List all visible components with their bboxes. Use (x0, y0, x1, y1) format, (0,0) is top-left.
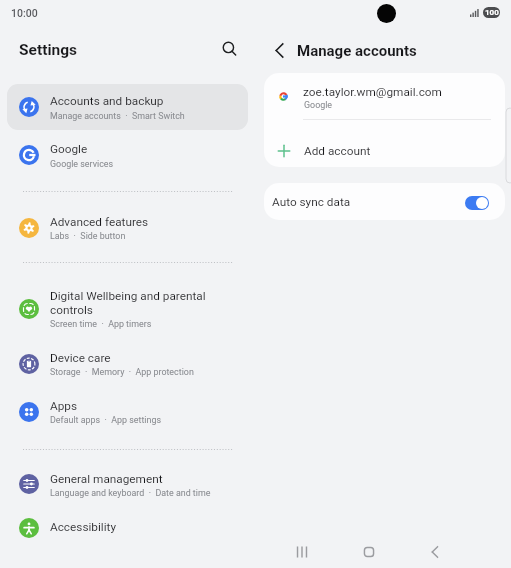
staticText: Accounts and backup (50, 94, 164, 108)
staticText: Manage accounts · Smart Switch (50, 111, 185, 121)
staticText: 10:00 (11, 7, 38, 19)
button[interactable]: Recents (285, 535, 319, 568)
staticText: Apps (50, 399, 78, 413)
staticText: Digital Wellbeing and parental (50, 289, 206, 303)
button[interactable] (7, 389, 248, 435)
staticText: 100 (485, 8, 499, 17)
button[interactable] (7, 286, 248, 332)
button[interactable] (264, 183, 505, 220)
button[interactable] (7, 84, 248, 130)
button[interactable]: Search (215, 34, 245, 64)
staticText: Auto sync data (272, 195, 351, 209)
staticText: zoe.taylor.wm@gmail.com (303, 85, 442, 99)
staticText: Default apps · App settings (50, 415, 161, 425)
button[interactable] (7, 84, 248, 130)
staticText: Settings (19, 41, 78, 59)
button[interactable] (7, 505, 248, 551)
button[interactable] (264, 120, 505, 167)
button[interactable] (7, 341, 248, 387)
staticText: Screen time · App timers (50, 319, 152, 329)
button[interactable] (7, 132, 248, 178)
staticText: controls (50, 303, 93, 317)
button[interactable]: Back (264, 35, 294, 65)
button[interactable] (7, 461, 248, 507)
staticText: Advanced features (50, 215, 149, 229)
button[interactable] (264, 73, 505, 119)
staticText: Language and keyboard · Date and time (50, 488, 211, 498)
button[interactable] (7, 205, 248, 251)
staticText: Device care (50, 351, 111, 365)
staticText: Google (304, 100, 333, 110)
button[interactable]: Back (419, 535, 453, 568)
staticText: Accessibility (50, 520, 117, 534)
staticText: Google services (50, 159, 114, 169)
staticText: Storage · Memory · App protection (50, 367, 194, 377)
staticText: General management (50, 472, 163, 486)
staticText: Manage accounts (297, 42, 417, 60)
staticText: Google (50, 142, 88, 156)
staticText: Labs · Side button (50, 231, 126, 241)
staticText: Add account (304, 144, 371, 158)
button[interactable]: Home (352, 535, 386, 568)
